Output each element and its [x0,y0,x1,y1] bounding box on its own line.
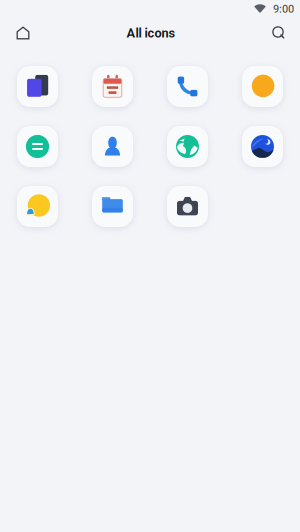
button[interactable]: Home [6,18,40,48]
button[interactable] [92,126,133,167]
staticText: All icons [126,25,175,40]
button[interactable] [17,186,58,227]
button[interactable] [242,126,283,167]
button[interactable] [92,66,133,107]
button[interactable] [17,126,58,167]
button[interactable] [17,66,58,107]
button[interactable]: Search [262,18,296,48]
button[interactable] [92,186,133,227]
staticText: 9:00 [273,3,294,15]
button[interactable] [167,66,208,107]
button[interactable] [167,186,208,227]
button[interactable] [167,126,208,167]
button[interactable] [242,66,283,107]
